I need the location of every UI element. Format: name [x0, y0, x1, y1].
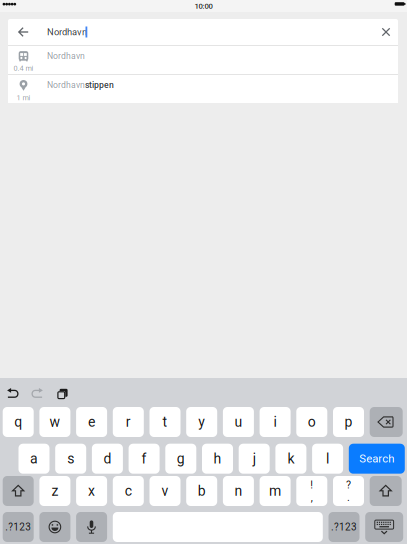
staticText: 10:00	[194, 1, 212, 11]
button[interactable]: Undo	[0, 383, 25, 405]
button[interactable]: q	[3, 407, 34, 437]
staticText: o	[308, 414, 316, 430]
button[interactable]: Back	[8, 19, 39, 45]
button[interactable]: v	[149, 476, 180, 506]
staticText: ,	[311, 491, 313, 503]
button[interactable]: 0.4 mi	[8, 46, 398, 74]
staticText: u	[234, 414, 242, 430]
button[interactable]: .?123	[328, 512, 359, 542]
button[interactable]: o	[296, 407, 327, 437]
button[interactable]: Dictate	[76, 512, 107, 542]
staticText: c	[125, 483, 132, 499]
staticText: q	[14, 414, 22, 430]
staticText: Nordhavn	[47, 26, 87, 37]
staticText: b	[198, 483, 206, 499]
button[interactable]: .?123	[3, 512, 34, 542]
button[interactable]: b	[186, 476, 217, 506]
staticText: x	[88, 483, 95, 499]
button[interactable]: z	[39, 476, 70, 506]
button[interactable]: !	[296, 476, 327, 506]
staticText: Nordhavn	[47, 51, 85, 61]
button[interactable]: r	[113, 407, 144, 437]
button[interactable]: c	[113, 476, 144, 506]
staticText: j	[253, 450, 256, 467]
staticText: w	[49, 414, 60, 430]
button[interactable]: w	[39, 407, 70, 437]
staticText: .?123	[331, 521, 357, 533]
staticText: .	[347, 491, 350, 503]
button[interactable]: a	[18, 444, 49, 474]
button[interactable]: Redo	[25, 383, 50, 405]
button[interactable]: u	[223, 407, 254, 437]
staticText: g	[177, 450, 185, 467]
button[interactable]: Shift	[370, 476, 402, 506]
staticText: l	[326, 450, 329, 467]
staticText: h	[213, 450, 221, 467]
button[interactable]: p	[333, 407, 364, 437]
staticText: Nordhavn	[47, 80, 85, 90]
button[interactable]: Clear search	[367, 19, 398, 45]
staticText: z	[51, 483, 58, 499]
button[interactable]: ?	[333, 476, 364, 506]
staticText: .?123	[5, 521, 31, 533]
button[interactable]: d	[92, 444, 123, 474]
button[interactable]: Delete	[370, 407, 403, 437]
staticText: m	[269, 483, 281, 499]
button[interactable]: Hide keyboard	[365, 512, 403, 542]
staticText: e	[88, 414, 95, 430]
staticText: y	[198, 414, 205, 430]
staticText: 1 mi	[16, 93, 30, 102]
staticText: n	[234, 483, 242, 499]
staticText: a	[30, 450, 38, 467]
button[interactable]: n	[223, 476, 254, 506]
button[interactable]: Shift	[3, 476, 34, 506]
staticText: stippen	[85, 80, 114, 90]
staticText: k	[287, 450, 294, 467]
staticText: f	[142, 450, 147, 467]
button[interactable]: t	[149, 407, 180, 437]
staticText: p	[344, 414, 352, 430]
button[interactable]: k	[275, 444, 306, 474]
button[interactable]: x	[76, 476, 107, 506]
staticText: !	[310, 478, 313, 491]
button[interactable]: h	[202, 444, 233, 474]
button[interactable]: s	[55, 444, 86, 474]
staticText: t	[162, 414, 167, 430]
button[interactable]: m	[260, 476, 291, 506]
staticText: v	[161, 483, 168, 499]
staticText: d	[103, 450, 111, 467]
button[interactable]: g	[165, 444, 196, 474]
button[interactable]: l	[312, 444, 343, 474]
button[interactable]: Paste	[50, 383, 75, 405]
button[interactable]: y	[186, 407, 217, 437]
button[interactable]: Search	[349, 444, 405, 474]
button[interactable]: e	[76, 407, 107, 437]
staticText: i	[274, 414, 277, 430]
button[interactable]: i	[260, 407, 291, 437]
staticText: 0.4 mi	[13, 64, 33, 73]
button[interactable]: f	[129, 444, 160, 474]
staticText: s	[67, 450, 74, 467]
button[interactable]: 1 mi	[8, 75, 398, 103]
staticText: Search	[359, 452, 394, 465]
button[interactable]: Emoji	[39, 512, 70, 542]
staticText: r	[126, 414, 131, 430]
button[interactable]: j	[239, 444, 270, 474]
staticText: ?	[346, 478, 351, 491]
